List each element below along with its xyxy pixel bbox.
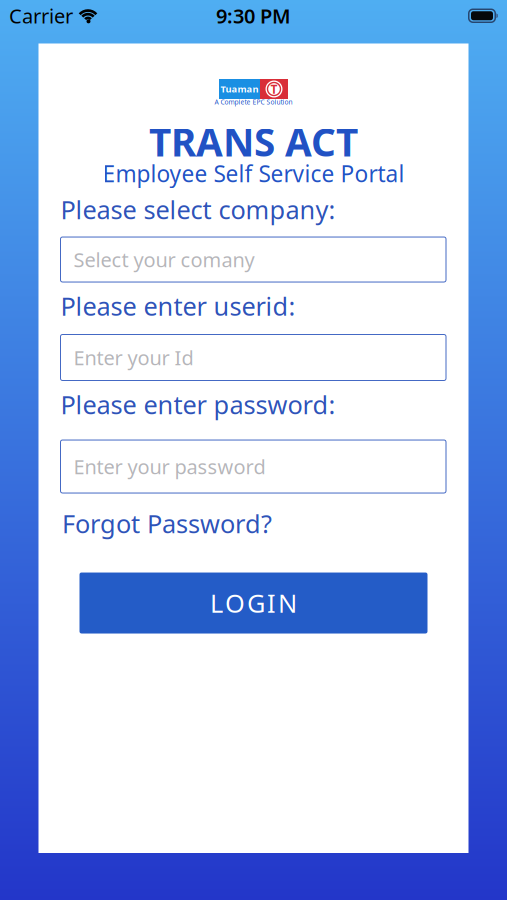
staticText: Please select company: (60, 193, 335, 226)
staticText: Employee Self Service Portal (102, 158, 404, 188)
staticText: Carrier (9, 2, 73, 29)
staticText: T (270, 81, 277, 97)
staticText: Please enter userid: (60, 289, 295, 323)
button[interactable]: Enter your password (60, 440, 446, 493)
staticText: Please enter password: (60, 388, 335, 421)
staticText: LOGIN (210, 586, 297, 620)
button[interactable]: Select your comany (60, 237, 446, 282)
staticText: Tuaman (220, 83, 258, 95)
button[interactable]: LOGIN (79, 572, 427, 633)
button[interactable]: Enter your Id (60, 334, 446, 380)
staticText: 9:30 PM (216, 2, 291, 29)
staticText: Select your comany (73, 246, 254, 273)
staticText: A Complete EPC Solution (214, 98, 292, 106)
staticText: TRANS ACT (149, 116, 358, 167)
staticText: Forgot Password? (62, 507, 272, 540)
staticText: Enter your Id (73, 344, 193, 371)
button[interactable]: Forgot Password? (62, 507, 272, 540)
staticText: Enter your password (73, 453, 265, 480)
